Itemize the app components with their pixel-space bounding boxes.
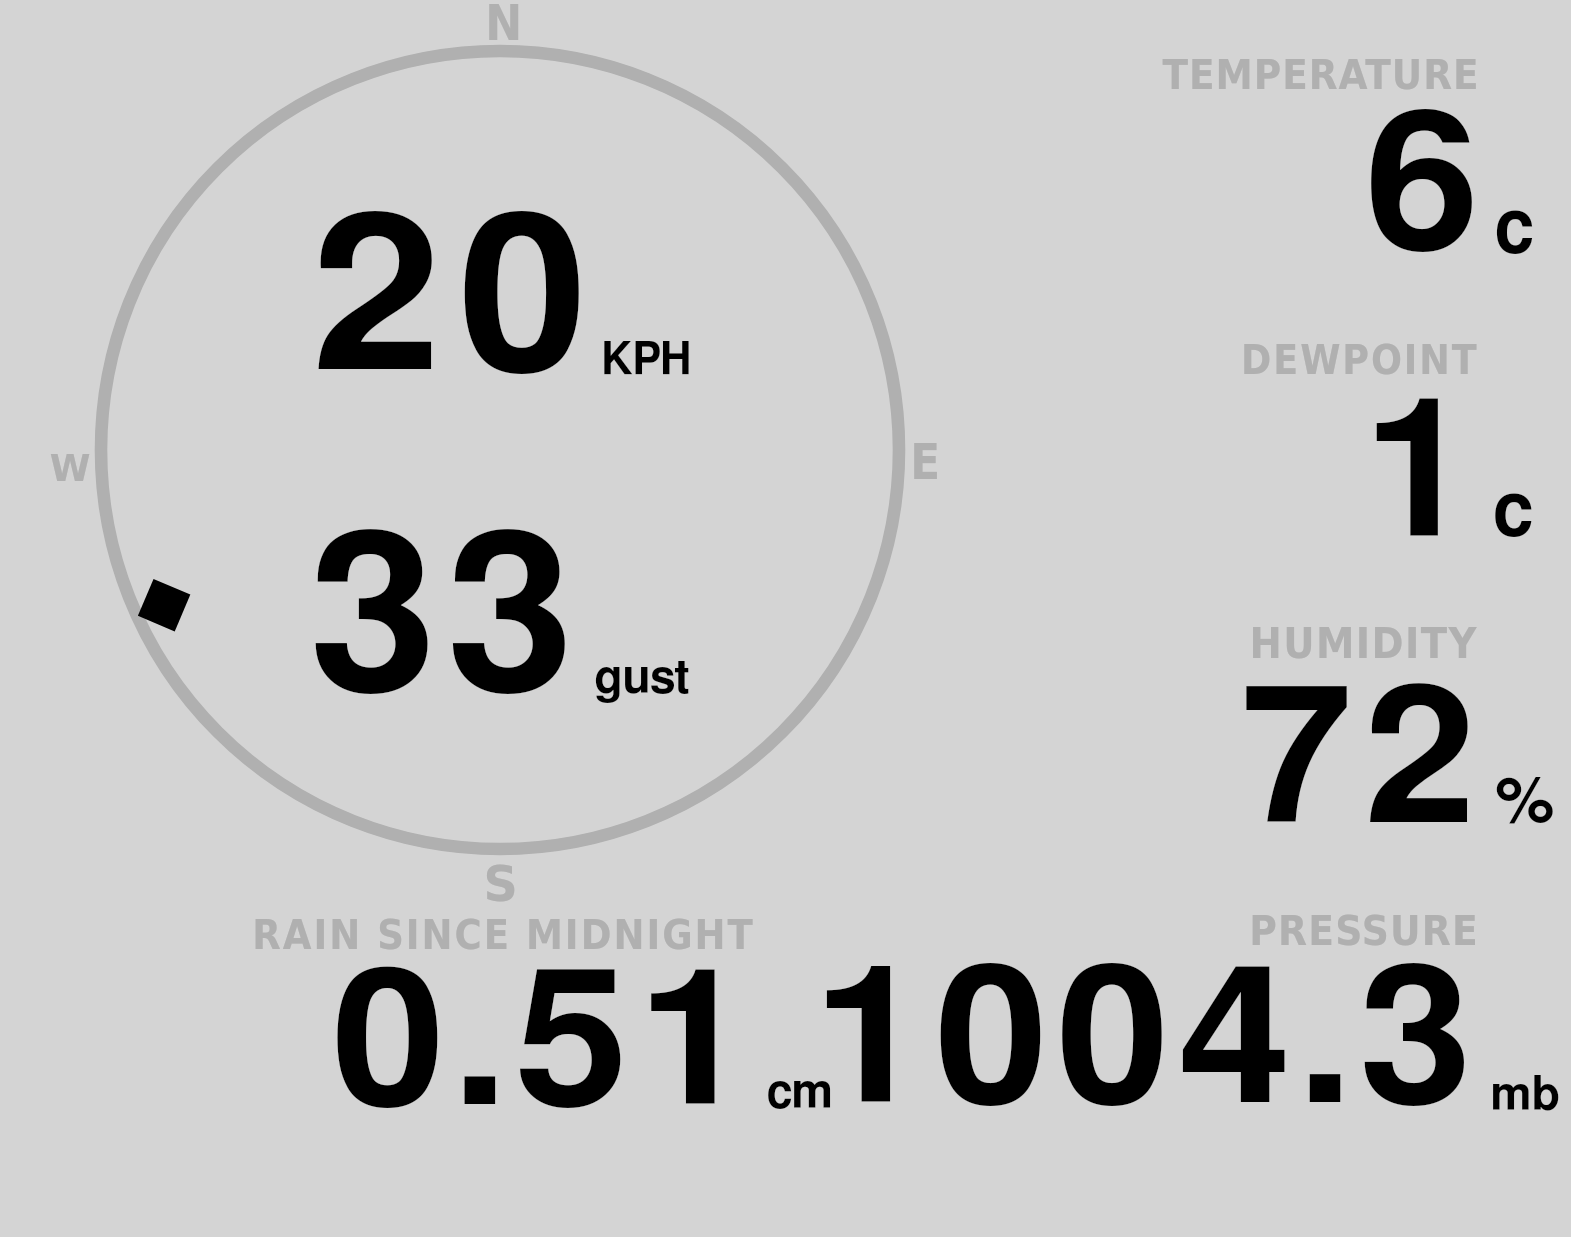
button[interactable]: Weather station dashboard bbox=[0, 0, 1571, 1237]
